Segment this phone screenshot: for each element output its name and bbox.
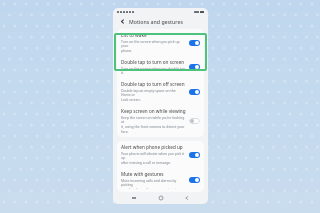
button[interactable]: Home	[156, 193, 166, 203]
button[interactable]: Lift to wake	[117, 29, 204, 56]
staticText: Double tap to turn off screen	[121, 81, 185, 87]
button[interactable]: Keep screen on while viewing	[117, 105, 204, 137]
staticText: your hand over the screen or turning you…	[121, 187, 186, 189]
button[interactable]: Toggle on	[189, 177, 200, 183]
staticText: face.	[121, 129, 129, 134]
staticText: Double tap an empty space on the Home or	[121, 88, 186, 97]
staticText: Alert when phone picked up	[121, 144, 183, 150]
staticText: Turn on the screen when you double tap i…	[121, 66, 186, 75]
button[interactable]: Toggle on	[189, 64, 200, 70]
staticText: Keep screen on while viewing	[121, 108, 186, 114]
button[interactable]: Double tap to turn off screen	[117, 78, 204, 105]
button[interactable]: Back	[118, 17, 127, 26]
staticText: Motions and gestures	[129, 18, 183, 25]
button[interactable]: Toggle off	[189, 118, 200, 124]
staticText: Mute with gestures	[121, 171, 164, 177]
staticText: Lift to wake	[121, 32, 147, 38]
staticText: phone.	[121, 48, 133, 53]
button[interactable]: Toggle on	[189, 89, 200, 95]
button[interactable]: Double tap to turn on screen	[117, 56, 204, 78]
staticText: Double tap to turn on screen	[121, 59, 185, 65]
button[interactable]: Alert when phone picked up	[117, 141, 204, 168]
staticText: Mute incoming calls and alarms by puttin…	[121, 178, 186, 187]
staticText: Your phone will vibrate when you pick it…	[121, 151, 186, 160]
button[interactable]: Toggle on	[189, 40, 200, 46]
button[interactable]: Toggle on	[189, 152, 200, 158]
staticText: Keep the screen on while you're looking …	[121, 115, 186, 124]
staticText: Lock screen.	[121, 97, 141, 102]
staticText: it, using the front camera to detect you…	[121, 124, 185, 129]
button[interactable]: Mute with gestures	[117, 168, 204, 192]
button[interactable]: Recent apps	[129, 193, 139, 203]
staticText: Turn on the screen when you pick up your	[121, 39, 186, 48]
button[interactable]: Back	[182, 193, 192, 203]
staticText: after missing a call or message.	[121, 160, 172, 165]
